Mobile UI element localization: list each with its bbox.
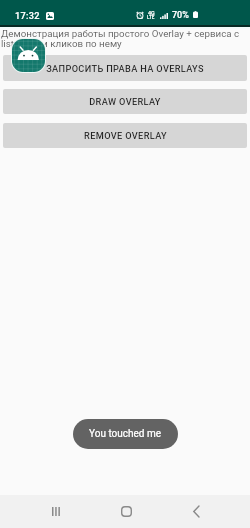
- staticText: REMOVE OVERLAY: [84, 130, 167, 141]
- button[interactable]: DRAW OVERLAY: [3, 89, 247, 114]
- staticText: 4G: [148, 10, 155, 16]
- button[interactable]: REMOVE OVERLAY: [3, 123, 247, 148]
- staticText: ЗАПРОСИТЬ ПРАВА НА OVERLAYS: [46, 63, 204, 74]
- staticText: LTE: [147, 15, 155, 20]
- staticText: You touched me: [89, 428, 162, 440]
- button[interactable]: Home: [106, 495, 146, 528]
- staticText: DRAW OVERLAY: [89, 96, 161, 107]
- button[interactable]: Recents: [36, 495, 76, 528]
- staticText: 17:32: [15, 10, 40, 21]
- other: Overlay icon: [11, 38, 46, 73]
- button[interactable]: You touched me: [73, 419, 178, 449]
- button[interactable]: ЗАПРОСИТЬ ПРАВА НА OVERLAYS: [3, 55, 247, 81]
- button[interactable]: Back: [176, 495, 216, 528]
- staticText: 70%: [172, 10, 189, 21]
- staticText: Демонстрация работы простого Overlay + с…: [1, 28, 248, 49]
